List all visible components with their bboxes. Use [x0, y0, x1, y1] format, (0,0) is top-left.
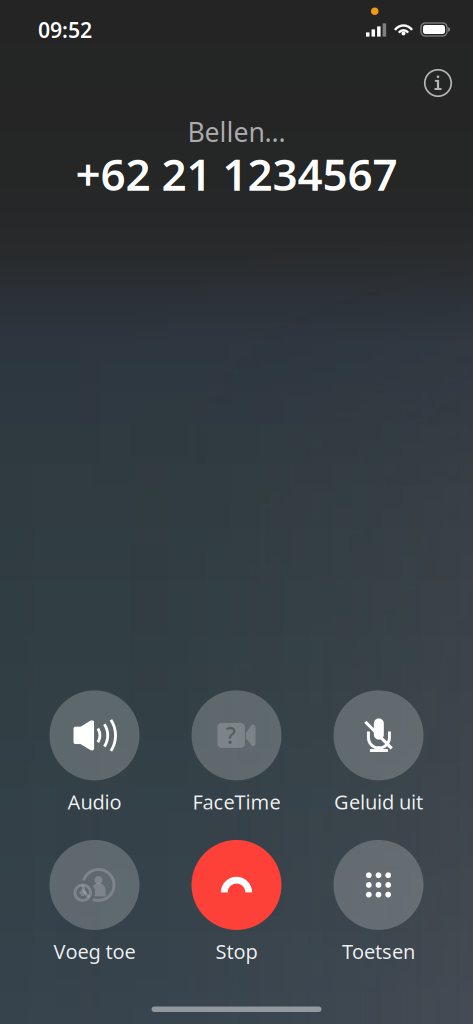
staticText: Audio	[67, 788, 121, 815]
button[interactable]: ?	[171, 690, 301, 815]
staticText: ?	[226, 720, 236, 750]
staticText: Toetsen	[342, 938, 415, 964]
staticText: Voeg toe	[53, 938, 135, 964]
staticText: Geluid uit	[334, 788, 423, 815]
button[interactable]: Audio	[29, 690, 159, 815]
staticText: 09:52	[38, 15, 92, 44]
staticText: Stop	[215, 938, 257, 964]
staticText: +62 21 1234567	[75, 144, 397, 203]
button[interactable]: Stop	[171, 840, 301, 964]
button[interactable]: Voeg toe	[29, 840, 159, 964]
button[interactable]: Toetsen	[313, 840, 443, 964]
staticText: FaceTime	[192, 788, 280, 815]
button[interactable]: Geluid uit	[313, 690, 443, 815]
button[interactable]: Call info	[416, 61, 460, 105]
staticText: Bellen...	[187, 114, 285, 149]
